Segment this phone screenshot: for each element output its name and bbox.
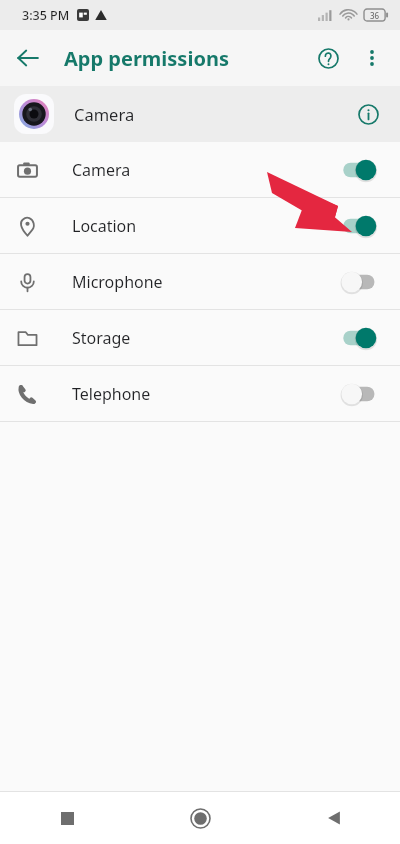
staticText: 3:35 PM: [22, 7, 70, 24]
button[interactable]: Microphone permission toggle: [336, 262, 384, 302]
button[interactable]: Back: [6, 36, 50, 80]
button[interactable]: Camera: [0, 142, 400, 197]
button[interactable]: App info: [346, 92, 390, 136]
button[interactable]: Telephone permission toggle: [336, 374, 384, 414]
button[interactable]: Back: [267, 792, 400, 844]
button[interactable]: Help: [306, 36, 350, 80]
staticText: Microphone: [72, 271, 163, 293]
button[interactable]: Recent apps: [0, 792, 134, 844]
button[interactable]: Telephone: [0, 366, 400, 421]
staticText: Telephone: [72, 383, 151, 405]
button[interactable]: Microphone: [0, 254, 400, 309]
button[interactable]: Camera: [0, 86, 400, 142]
button[interactable]: Home: [134, 792, 267, 844]
staticText: Storage: [72, 327, 131, 349]
staticText: Location: [72, 215, 137, 237]
button[interactable]: Storage: [0, 310, 400, 365]
staticText: Camera: [72, 159, 131, 181]
staticText: Camera: [74, 103, 135, 125]
button[interactable]: Location permission toggle: [336, 206, 384, 246]
button[interactable]: Camera permission toggle: [336, 150, 384, 190]
button[interactable]: More options: [350, 36, 394, 80]
staticText: App permissions: [64, 45, 229, 72]
button[interactable]: Storage permission toggle: [336, 318, 384, 358]
button[interactable]: Location: [0, 198, 400, 253]
staticText: 36: [370, 10, 380, 21]
